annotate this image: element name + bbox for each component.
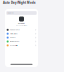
- staticText: Auto Day/Night Mode: [3, 1, 36, 4]
- button[interactable]: Accessibility: [5, 43, 38, 47]
- staticText: Display & Text: [10, 41, 19, 42]
- staticText: Notifications: [10, 33, 18, 35]
- button[interactable]: Search: [6, 11, 37, 15]
- button[interactable]: Notifications: [5, 32, 38, 36]
- button[interactable]: Privacy: [5, 36, 38, 39]
- staticText: Accessibility: [10, 44, 18, 46]
- staticText: Privacy: [10, 37, 16, 38]
- button[interactable]: Appearance: [5, 28, 38, 32]
- staticText: Search: [7, 12, 13, 14]
- button[interactable]: Display & Text: [5, 39, 38, 43]
- staticText: Personal settings: [15, 25, 27, 26]
- staticText: Appearance: [10, 29, 20, 31]
- staticText: Account: [18, 22, 25, 24]
- button[interactable]: Auto Day/Night Mode: [3, 1, 36, 4]
